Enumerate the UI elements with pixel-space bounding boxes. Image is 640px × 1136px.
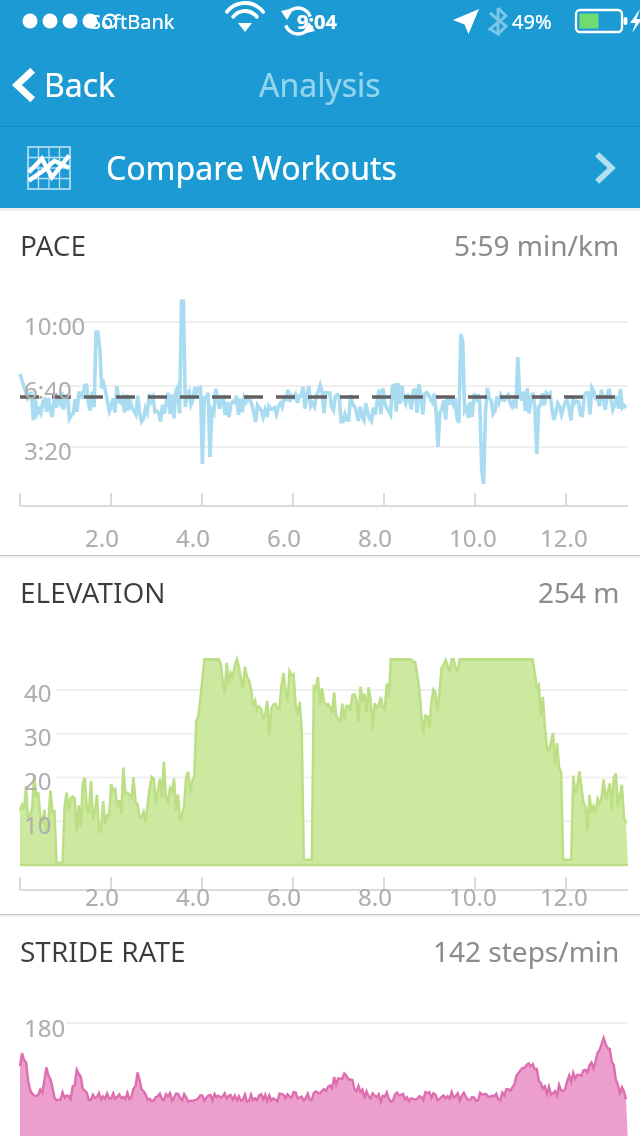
button[interactable]: Back bbox=[0, 51, 134, 119]
staticText: 30 bbox=[24, 720, 52, 753]
staticText: 6:40 bbox=[24, 373, 72, 406]
staticText: 5:59 min/km bbox=[454, 226, 620, 264]
staticText: Back bbox=[44, 63, 116, 107]
staticText: 254 m bbox=[538, 573, 620, 611]
staticText: 10.0 bbox=[449, 880, 497, 913]
staticText: 4.0 bbox=[176, 880, 210, 913]
staticText: 8.0 bbox=[358, 880, 392, 913]
staticText: Analysis bbox=[259, 63, 381, 107]
staticText: Compare Workouts bbox=[106, 146, 397, 190]
staticText: PACE bbox=[20, 226, 87, 264]
staticText: 10.0 bbox=[449, 521, 497, 554]
staticText: 10:00 bbox=[24, 309, 86, 342]
staticText: 9:04 bbox=[297, 8, 337, 35]
staticText: 49% bbox=[512, 8, 552, 35]
staticText: 40 bbox=[24, 676, 52, 709]
staticText: 20 bbox=[24, 764, 52, 797]
staticText: 180 bbox=[24, 1011, 66, 1044]
staticText: 4.0 bbox=[176, 521, 210, 554]
staticText: 6.0 bbox=[267, 521, 301, 554]
staticText: 6.0 bbox=[267, 880, 301, 913]
button[interactable]: Compare Workouts bbox=[0, 127, 640, 208]
staticText: 12.0 bbox=[540, 880, 588, 913]
staticText: 12.0 bbox=[540, 521, 588, 554]
staticText: 2.0 bbox=[85, 521, 119, 554]
staticText: 10 bbox=[24, 808, 52, 841]
other: Open Compare Workouts bbox=[594, 150, 614, 186]
staticText: STRIDE RATE bbox=[20, 932, 186, 970]
staticText: 8.0 bbox=[358, 521, 392, 554]
staticText: SoftBank bbox=[90, 8, 175, 35]
staticText: 3:20 bbox=[24, 434, 72, 467]
staticText: 142 steps/min bbox=[433, 932, 620, 970]
staticText: 2.0 bbox=[85, 880, 119, 913]
staticText: ELEVATION bbox=[20, 573, 166, 611]
